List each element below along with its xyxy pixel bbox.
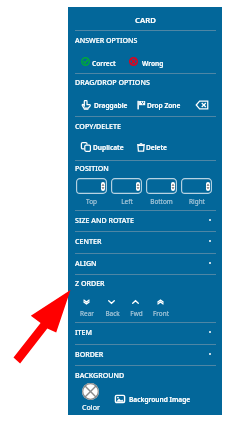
staticText: Wrong xyxy=(142,59,164,68)
staticText: Drop Zone xyxy=(147,101,181,110)
button[interactable]: Top xyxy=(76,178,107,204)
staticText: CARD xyxy=(135,15,156,26)
staticText: Left xyxy=(121,197,133,206)
staticText: Draggable xyxy=(94,101,128,110)
button[interactable]: Duplicate xyxy=(80,140,111,153)
button[interactable]: Color xyxy=(80,383,102,410)
button[interactable]: BORDER xyxy=(68,345,222,365)
button[interactable]: Clear xyxy=(196,99,208,111)
staticText: ANSWER OPTIONS xyxy=(75,35,138,45)
button[interactable]: CENTER xyxy=(68,232,222,252)
button[interactable]: Left xyxy=(111,178,142,204)
button[interactable]: SIZE AND ROTATE xyxy=(68,211,222,231)
staticText: DRAG/DROP OPTIONS xyxy=(75,77,150,87)
button[interactable]: Delete xyxy=(135,140,156,153)
staticText: Duplicate xyxy=(93,143,124,152)
button[interactable]: Right xyxy=(181,178,212,204)
staticText: Back xyxy=(105,309,120,318)
button[interactable]: Drop Zone xyxy=(135,98,169,111)
button[interactable]: Rear xyxy=(75,297,99,317)
button[interactable]: Front xyxy=(149,297,173,317)
staticText: CENTER xyxy=(75,236,102,246)
staticText: ITEM xyxy=(75,327,92,337)
button[interactable]: Back xyxy=(100,297,124,317)
button[interactable]: Wrong xyxy=(128,55,150,68)
staticText: Z ORDER xyxy=(75,278,105,288)
staticText: Right xyxy=(189,197,205,206)
staticText: Correct xyxy=(92,59,116,68)
button[interactable]: Background Image xyxy=(114,392,176,405)
staticText: Delete xyxy=(146,143,167,152)
button[interactable]: Correct xyxy=(80,55,104,68)
staticText: BORDER xyxy=(75,349,104,359)
staticText: Color xyxy=(82,402,100,412)
button[interactable]: Bottom xyxy=(146,178,177,204)
staticText: Bottom xyxy=(150,197,173,206)
staticText: Background Image xyxy=(129,395,191,404)
button[interactable]: Draggable xyxy=(80,98,114,111)
staticText: BACKGROUND xyxy=(75,370,125,380)
staticText: Front xyxy=(153,309,169,318)
staticText: SIZE AND ROTATE xyxy=(75,215,134,225)
staticText: Rear xyxy=(80,309,94,318)
button[interactable]: ITEM xyxy=(68,323,222,343)
button[interactable]: ALIGN xyxy=(68,254,222,274)
staticText: POSITION xyxy=(75,163,109,173)
staticText: Fwd xyxy=(130,309,143,318)
staticText: ALIGN xyxy=(75,258,97,268)
staticText: Top xyxy=(86,197,97,206)
staticText: COPY/DELETE xyxy=(75,121,121,131)
button[interactable]: Fwd xyxy=(124,297,148,317)
